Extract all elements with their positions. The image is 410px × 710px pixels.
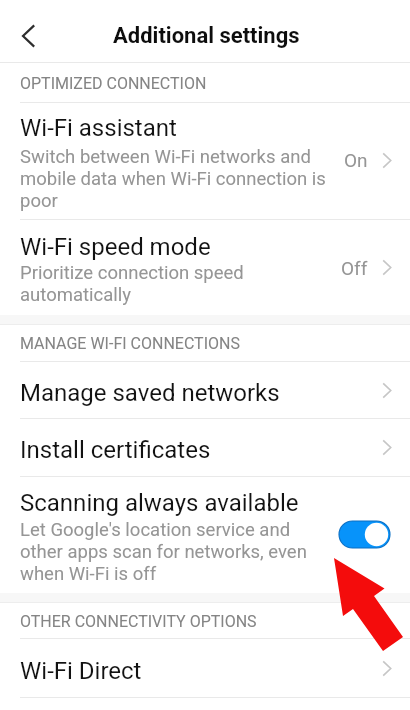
button[interactable]: Manage saved networks: [0, 362, 410, 418]
staticText: OTHER CONNECTIVITY OPTIONS: [20, 612, 257, 631]
button[interactable]: Scanning always available: [0, 477, 410, 593]
staticText: Switch between Wi-Fi networks and mobile…: [20, 146, 326, 212]
button[interactable]: Wi-Fi speed mode: [0, 220, 410, 315]
staticText: Manage saved networks: [20, 379, 280, 407]
button[interactable]: Scanning always available toggle: [339, 521, 390, 548]
staticText: Wi-Fi speed mode: [20, 233, 211, 261]
staticText: Scanning always available: [20, 489, 299, 517]
staticText: MANAGE WI-FI CONNECTIONS: [20, 334, 240, 353]
button[interactable]: Wi-Fi assistant: [0, 103, 410, 220]
staticText: Additional settings: [113, 23, 300, 49]
staticText: OPTIMIZED CONNECTION: [20, 74, 207, 93]
button[interactable]: Install certificates: [0, 419, 410, 476]
button[interactable]: Wi-Fi Direct: [0, 639, 410, 697]
button[interactable]: Back: [5, 13, 51, 59]
staticText: Prioritize connection speed automaticall…: [20, 262, 244, 306]
staticText: Off: [341, 257, 368, 279]
staticText: On: [344, 149, 368, 171]
staticText: Let Google's location service and other …: [20, 519, 307, 585]
staticText: Wi-Fi Direct: [20, 657, 142, 685]
staticText: Wi-Fi assistant: [20, 114, 177, 142]
staticText: Install certificates: [20, 436, 211, 464]
